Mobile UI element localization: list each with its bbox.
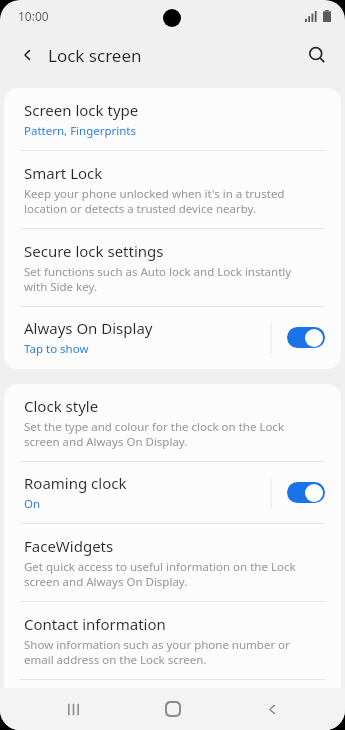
button[interactable]: Notifications bbox=[4, 680, 341, 730]
staticText: Screen lock type bbox=[24, 101, 139, 120]
staticText: Contact information bbox=[24, 615, 166, 634]
button[interactable]: Home bbox=[146, 688, 200, 730]
button[interactable]: Back bbox=[8, 35, 48, 75]
staticText: Tap to show bbox=[24, 341, 89, 356]
button[interactable]: Secure lock settings bbox=[4, 229, 341, 306]
staticText: Set functions such as Auto lock and Lock… bbox=[24, 264, 315, 294]
staticText: Lock screen bbox=[48, 44, 142, 67]
staticText: Secure lock settings bbox=[24, 242, 164, 261]
button[interactable]: Back bbox=[245, 688, 299, 730]
staticText: Roaming clock bbox=[24, 474, 127, 493]
staticText: Show information such as your phone numb… bbox=[24, 637, 315, 667]
staticText: On bbox=[24, 496, 41, 511]
staticText: Get quick access to useful information o… bbox=[24, 559, 315, 589]
button[interactable]: Smart Lock bbox=[4, 151, 341, 228]
button[interactable]: Search bbox=[297, 35, 337, 75]
button[interactable]: Clock style bbox=[4, 384, 341, 461]
staticText: Smart Lock bbox=[24, 164, 103, 183]
staticText: Set the type and colour for the clock on… bbox=[24, 419, 315, 449]
staticText: Notifications bbox=[24, 692, 114, 711]
button[interactable]: Toggle on bbox=[287, 327, 325, 348]
staticText: 10:00 bbox=[18, 8, 49, 24]
staticText: Always On Display bbox=[24, 319, 153, 338]
button[interactable]: Toggle on bbox=[287, 482, 325, 503]
button[interactable]: Recent apps bbox=[46, 688, 100, 730]
button[interactable]: Screen lock type bbox=[4, 88, 341, 150]
staticText: Clock style bbox=[24, 397, 99, 416]
staticText: Pattern, Fingerprints bbox=[24, 123, 137, 138]
button[interactable]: FaceWidgets bbox=[4, 524, 341, 601]
button[interactable]: Contact information bbox=[4, 602, 341, 679]
staticText: FaceWidgets bbox=[24, 537, 114, 556]
button[interactable]: Always On Display bbox=[4, 307, 341, 369]
staticText: Keep your phone unlocked when it's in a … bbox=[24, 186, 315, 216]
button[interactable]: Roaming clock bbox=[4, 462, 341, 523]
